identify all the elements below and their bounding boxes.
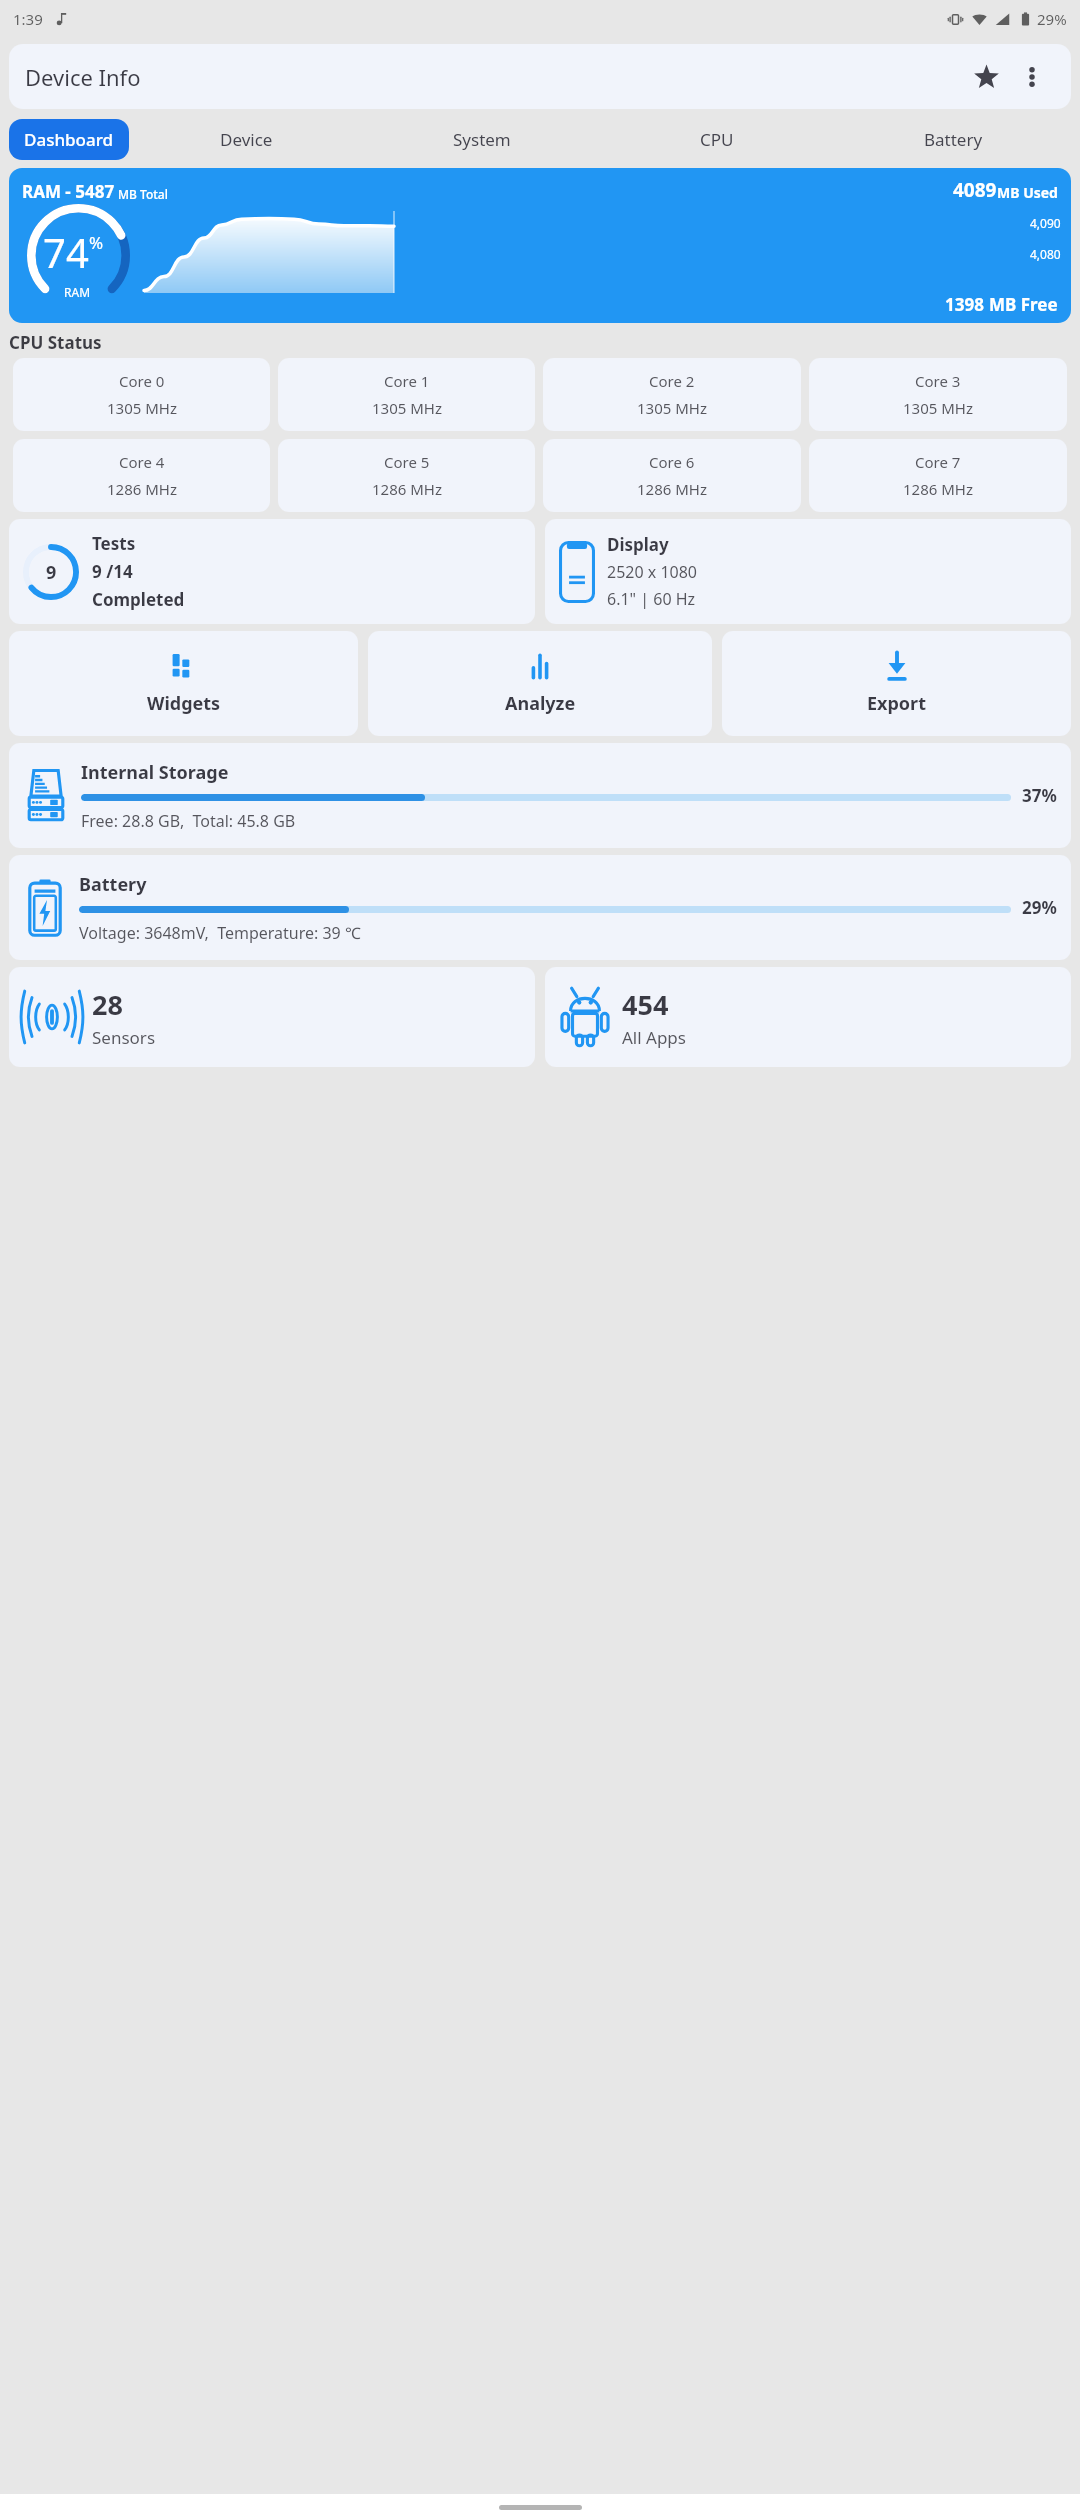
- staticText: CPU Status: [9, 331, 102, 354]
- staticText: 9: [46, 560, 57, 585]
- staticText: Core 5: [384, 452, 430, 472]
- staticText: 1:39: [13, 9, 43, 29]
- button[interactable]: Dashboard: [9, 119, 129, 160]
- button[interactable]: Core 1: [278, 358, 535, 431]
- button[interactable]: Internal Storage: [9, 743, 1071, 848]
- staticText: Export: [867, 691, 926, 716]
- staticText: 1286 MHz: [107, 479, 177, 499]
- staticText: Completed: [92, 588, 185, 611]
- staticText: Dashboard: [24, 128, 114, 151]
- staticText: 29%: [1037, 9, 1067, 29]
- button[interactable]: CPU: [691, 119, 743, 160]
- button[interactable]: RAM - 5487: [9, 168, 1071, 323]
- staticText: Core 4: [119, 452, 165, 472]
- staticText: 29%: [1022, 896, 1057, 919]
- staticText: 1305 MHz: [372, 398, 442, 418]
- button[interactable]: Favorite: [963, 54, 1009, 100]
- staticText: 37%: [1022, 784, 1057, 807]
- staticText: Free: 28.8 GB, Total: 45.8 GB: [81, 810, 296, 832]
- button[interactable]: Display: [545, 519, 1071, 624]
- staticText: Display: [607, 533, 669, 556]
- button[interactable]: Device Info: [9, 44, 1071, 109]
- staticText: 2520 x 1080: [607, 561, 698, 583]
- staticText: 4089: [953, 177, 997, 203]
- staticText: 6.1" | 60 Hz: [607, 588, 696, 610]
- button[interactable]: 9: [9, 519, 535, 624]
- button[interactable]: Core 7: [809, 439, 1067, 512]
- staticText: RAM: [64, 284, 91, 300]
- staticText: Analyze: [505, 691, 576, 716]
- staticText: 9 /14: [92, 560, 133, 583]
- button[interactable]: Analyze: [368, 631, 712, 736]
- staticText: %: [89, 231, 104, 254]
- staticText: 1398: [945, 293, 984, 316]
- staticText: Core 2: [649, 371, 695, 391]
- staticText: Battery: [79, 872, 147, 897]
- staticText: MB Total: [118, 186, 168, 202]
- button[interactable]: System: [444, 119, 520, 160]
- button[interactable]: Core 0: [13, 358, 270, 431]
- button[interactable]: Core 2: [543, 358, 801, 431]
- staticText: Core 7: [915, 452, 961, 472]
- staticText: Voltage: 3648mV, Temperature: 39 ℃: [79, 922, 361, 944]
- staticText: Internal Storage: [81, 760, 229, 785]
- button[interactable]: More options: [1009, 54, 1055, 100]
- staticText: 1305 MHz: [637, 398, 707, 418]
- staticText: Widgets: [147, 691, 221, 716]
- button[interactable]: Battery: [915, 119, 992, 160]
- staticText: 454: [622, 986, 669, 1023]
- staticText: 74: [43, 225, 89, 279]
- staticText: 1286 MHz: [903, 479, 973, 499]
- staticText: 1305 MHz: [107, 398, 177, 418]
- button[interactable]: Widgets: [9, 631, 358, 736]
- staticText: Device Info: [25, 62, 141, 92]
- staticText: 1305 MHz: [903, 398, 973, 418]
- staticText: MB Free: [989, 293, 1058, 316]
- staticText: 1286 MHz: [637, 479, 707, 499]
- staticText: Device: [220, 128, 273, 151]
- button[interactable]: Core 3: [809, 358, 1067, 431]
- button[interactable]: Export: [722, 631, 1071, 736]
- button[interactable]: 28: [9, 967, 535, 1067]
- staticText: Battery: [924, 128, 983, 151]
- staticText: Sensors: [92, 1026, 156, 1049]
- staticText: 28: [92, 986, 123, 1023]
- button[interactable]: Core 4: [13, 439, 270, 512]
- staticText: 4,090: [1030, 215, 1061, 231]
- staticText: RAM - 5487: [22, 180, 115, 203]
- button[interactable]: Device: [211, 119, 282, 160]
- staticText: System: [453, 128, 511, 151]
- button[interactable]: 454: [545, 967, 1071, 1067]
- button[interactable]: Battery: [9, 855, 1071, 960]
- staticText: Core 6: [649, 452, 695, 472]
- staticText: All Apps: [622, 1026, 686, 1049]
- staticText: Core 0: [119, 371, 165, 391]
- staticText: MB Used: [997, 183, 1058, 202]
- button[interactable]: Core 6: [543, 439, 801, 512]
- staticText: Core 3: [915, 371, 961, 391]
- staticText: CPU: [700, 128, 734, 151]
- staticText: 1286 MHz: [372, 479, 442, 499]
- staticText: Tests: [92, 532, 136, 555]
- staticText: 4,080: [1030, 246, 1061, 262]
- button[interactable]: Core 5: [278, 439, 535, 512]
- staticText: Core 1: [384, 371, 430, 391]
